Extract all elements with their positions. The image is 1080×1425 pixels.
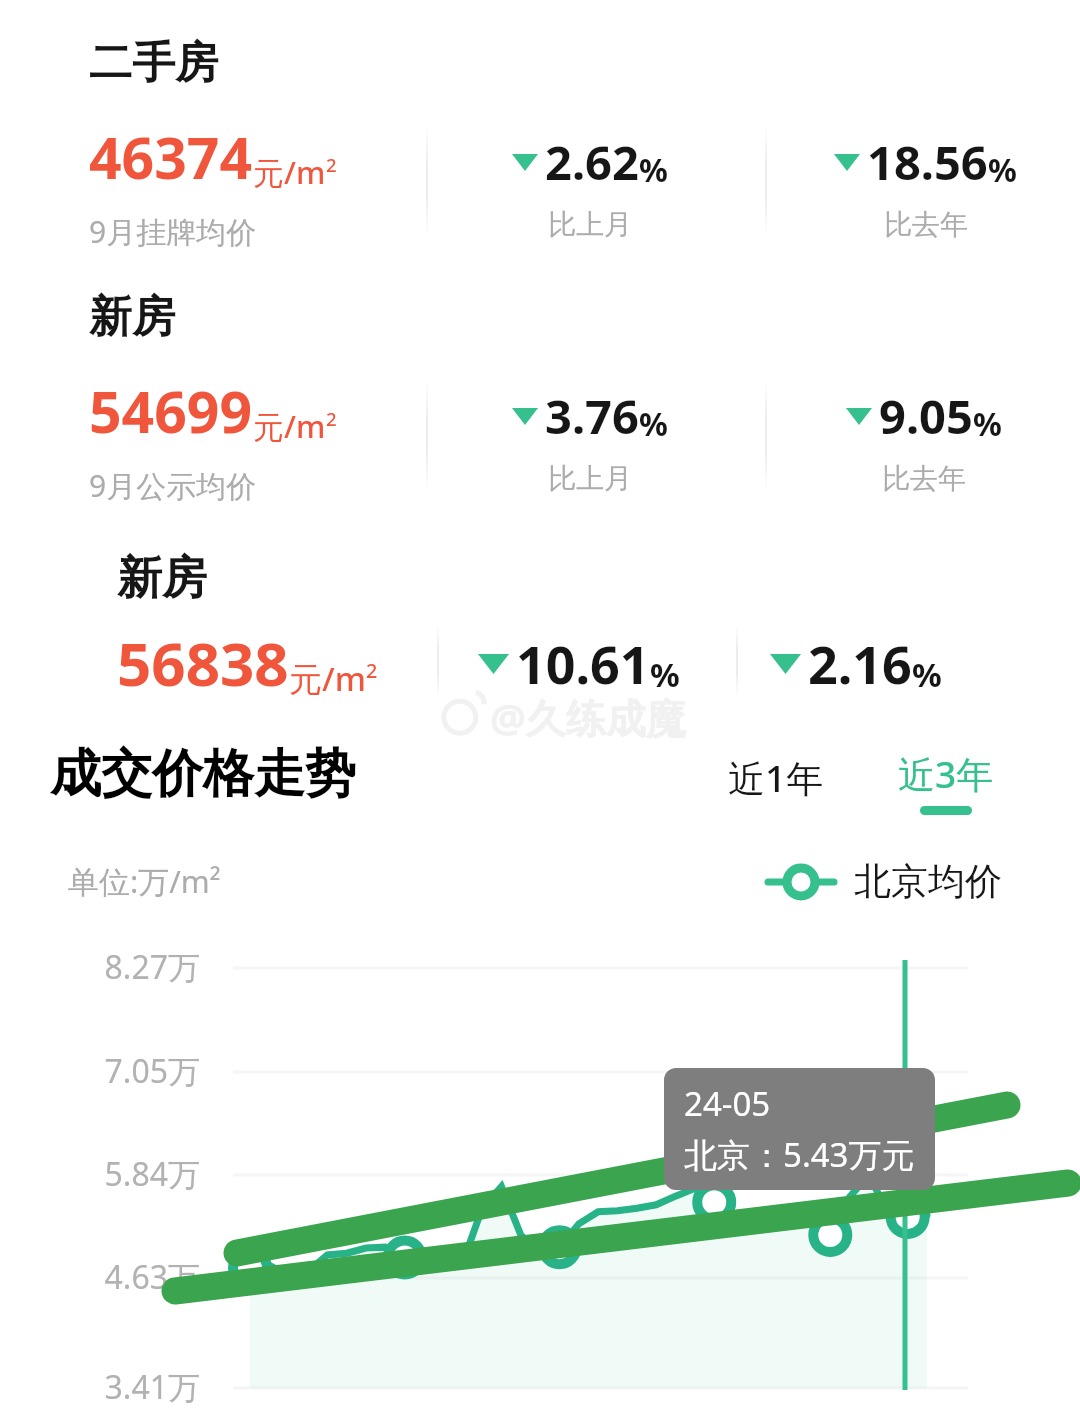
button[interactable]: 3.76 xyxy=(512,384,668,496)
staticText: 4.63万 xyxy=(58,1255,200,1299)
staticText: 比去年 xyxy=(884,207,968,242)
staticText: % xyxy=(912,652,942,697)
staticText: % xyxy=(639,148,668,192)
staticText: % xyxy=(973,402,1002,446)
staticText: 比上月 xyxy=(548,207,632,242)
staticText: 3.76 xyxy=(545,384,639,448)
staticText: 新房 xyxy=(117,550,207,607)
button[interactable]: 9.05 xyxy=(846,384,1002,496)
staticText: 新房 xyxy=(89,290,175,344)
staticText: 46374 xyxy=(89,118,253,196)
staticText: 近1年 xyxy=(728,752,824,803)
button[interactable]: 2.62 xyxy=(512,130,668,242)
staticText: 元/m xyxy=(253,405,326,447)
staticText: 元/m xyxy=(253,151,326,193)
staticText: 9.05 xyxy=(879,384,973,448)
staticText: 9月公示均价 xyxy=(89,465,257,506)
staticText: 单位:万/m² xyxy=(68,860,221,902)
staticText: 2 xyxy=(326,152,337,177)
staticText: 元/m xyxy=(289,656,366,701)
staticText: 18.56 xyxy=(867,130,988,194)
button[interactable]: 近1年 xyxy=(728,752,824,803)
staticText: 成交价格走势 xyxy=(50,742,356,806)
staticText: 56838 xyxy=(117,622,289,704)
staticText: 二手房 xyxy=(89,36,218,90)
button[interactable]: 2.16 xyxy=(770,628,942,699)
button[interactable]: 北京均价 xyxy=(768,858,1002,905)
staticText: 8.27万 xyxy=(58,945,200,989)
staticText: % xyxy=(988,148,1017,192)
other: 数据提示 24-05 北京均价 xyxy=(684,1081,915,1177)
staticText: 5.84万 xyxy=(58,1152,200,1196)
staticText: 9月挂牌均价 xyxy=(89,211,257,252)
staticText: 3.41万 xyxy=(58,1365,200,1409)
button[interactable]: 18.56 xyxy=(834,130,1017,242)
staticText: 7.05万 xyxy=(58,1049,200,1093)
staticText: 2.62 xyxy=(545,130,639,194)
staticText: % xyxy=(639,402,668,446)
staticText: 2 xyxy=(326,406,337,431)
button[interactable]: 10.61 xyxy=(478,628,680,699)
staticText: @久练成魔 xyxy=(490,690,686,745)
staticText: 近3年 xyxy=(898,748,994,799)
staticText: 54699 xyxy=(89,372,253,450)
button[interactable]: 近3年 xyxy=(898,748,994,815)
staticText: 10.61 xyxy=(516,628,650,699)
staticText: % xyxy=(650,652,680,697)
staticText: 比去年 xyxy=(882,461,966,496)
staticText: 24-05 xyxy=(684,1081,771,1126)
staticText: 2 xyxy=(366,657,378,684)
staticText: 北京均价 xyxy=(854,858,1002,905)
staticText: 北京：5.43万元 xyxy=(684,1132,915,1177)
staticText: 比上月 xyxy=(548,461,632,496)
staticText: 2.16 xyxy=(808,628,912,699)
